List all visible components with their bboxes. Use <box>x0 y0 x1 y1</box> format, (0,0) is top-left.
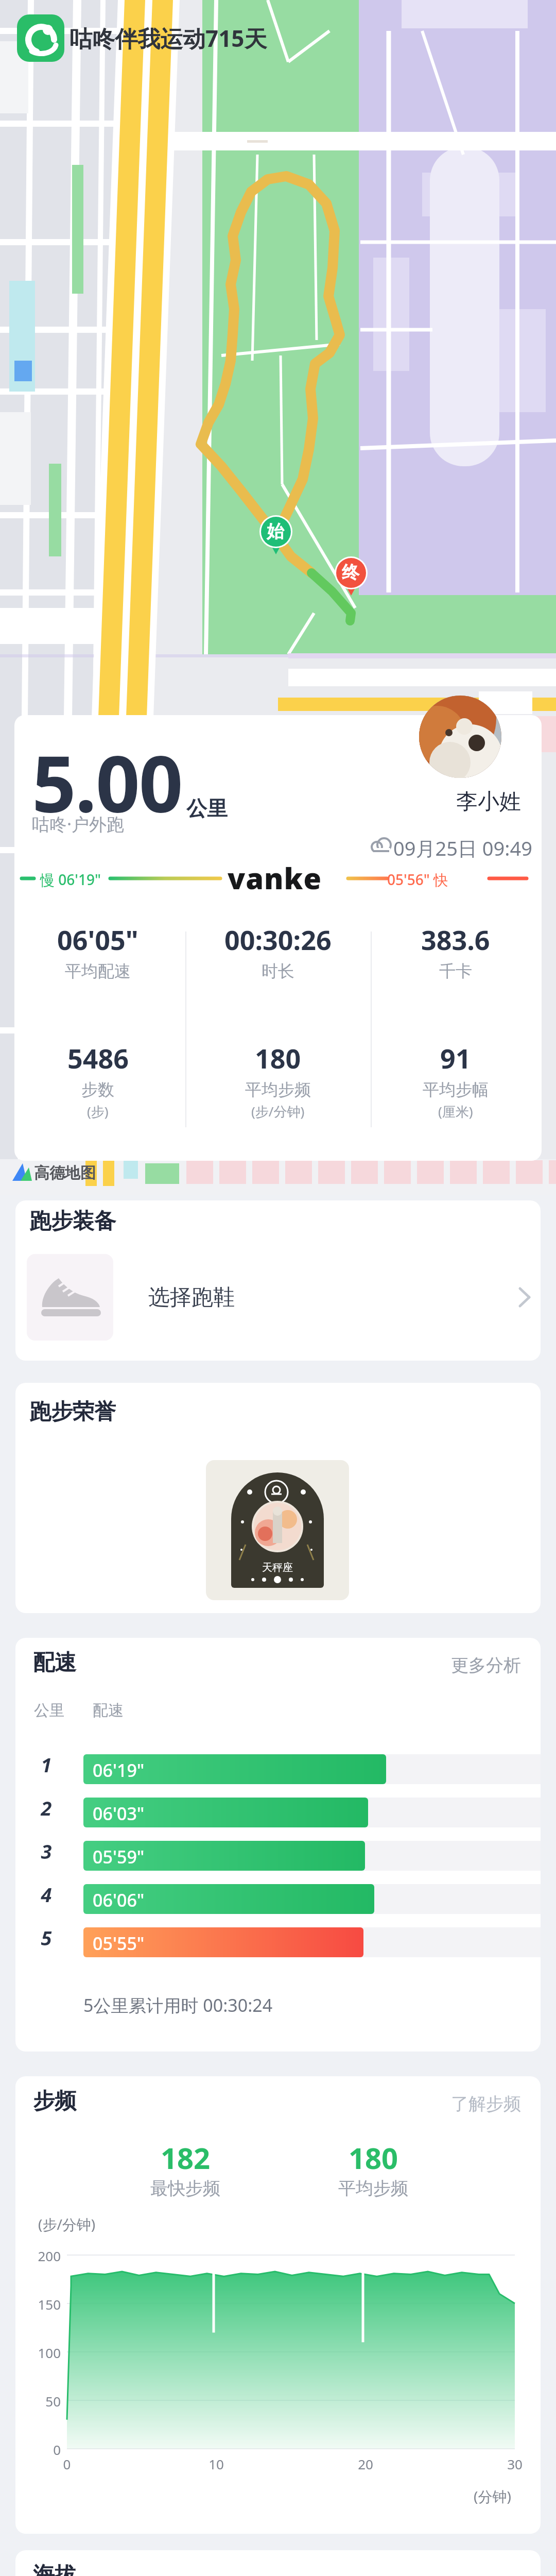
staticText: 5486 <box>67 1040 129 1076</box>
staticText: 公里 <box>34 1701 65 1720</box>
staticText: 公里 <box>186 795 228 821</box>
staticText: 30 <box>499 2455 530 2473</box>
staticText: 步频 <box>33 2088 76 2115</box>
staticText: 5 <box>36 1924 57 1951</box>
staticText: 终 <box>342 562 359 584</box>
button[interactable]: 天秤座 <box>206 1460 349 1600</box>
staticText: 时长 <box>262 961 294 981</box>
button[interactable]: 了解步频 <box>451 2093 521 2115</box>
staticText: 慢 06'19" <box>40 870 101 889</box>
staticText: 50 <box>28 2392 61 2410</box>
staticText: 180 <box>255 1040 301 1076</box>
staticText: 91 <box>440 1040 471 1076</box>
staticText: 高德地图 <box>34 1163 96 1183</box>
staticText: 始 <box>267 520 284 543</box>
staticText: (步/分钟) <box>251 1102 305 1121</box>
staticText: 06'06" <box>93 1888 145 1912</box>
staticText: 平均步频 <box>245 1079 311 1100</box>
staticText: 06'03" <box>93 1802 145 1825</box>
staticText: 0 <box>28 2441 61 2459</box>
staticText: (厘米) <box>438 1102 473 1121</box>
staticText: 4 <box>36 1881 57 1908</box>
staticText: 06'19" <box>93 1758 145 1782</box>
staticText: 06'05" <box>57 921 138 958</box>
staticText: 海拔 <box>33 2562 76 2576</box>
staticText: 最快步频 <box>150 2177 220 2199</box>
staticText: 跑步装备 <box>29 1208 116 1235</box>
staticText: (分钟) <box>474 2486 511 2506</box>
staticText: 步数 <box>81 1079 114 1100</box>
staticText: 平均配速 <box>65 961 131 981</box>
staticText: 咕咚·户外跑 <box>32 812 125 836</box>
staticText: 05'59" <box>93 1845 145 1869</box>
button[interactable]: 咕咚伴我运动715天 <box>17 14 267 62</box>
staticText: 00:30:26 <box>224 921 332 958</box>
staticText: 配速 <box>33 1649 76 1676</box>
button[interactable]: 选择跑鞋 <box>27 1254 530 1341</box>
staticText: 180 <box>349 2138 398 2177</box>
staticText: 选择跑鞋 <box>148 1284 235 1311</box>
staticText: 咕咚伴我运动715天 <box>69 23 267 54</box>
staticText: 5公里累计用时 00:30:24 <box>83 1993 273 2017</box>
button[interactable]: 更多分析 <box>451 1654 521 1676</box>
staticText: 05'55" <box>93 1931 145 1955</box>
staticText: 0 <box>51 2455 82 2473</box>
staticText: 千卡 <box>439 961 472 981</box>
staticText: vanke <box>228 858 322 897</box>
staticText: 09月25日 09:49 <box>393 835 532 861</box>
staticText: 05'56" 快 <box>387 870 448 889</box>
staticText: 150 <box>28 2295 61 2313</box>
staticText: 200 <box>28 2247 61 2265</box>
staticText: 5.00 <box>32 730 182 835</box>
staticText: 1 <box>36 1751 57 1778</box>
staticText: 平均步频 <box>338 2177 408 2199</box>
staticText: (步) <box>87 1102 109 1121</box>
staticText: 10 <box>201 2455 232 2473</box>
staticText: 李小姓 <box>456 788 521 816</box>
staticText: 平均步幅 <box>423 1079 489 1100</box>
staticText: 383.6 <box>421 921 490 958</box>
staticText: 天秤座 <box>262 1561 293 1574</box>
staticText: (步/分钟) <box>38 2214 96 2234</box>
staticText: 182 <box>161 2138 211 2177</box>
staticText: 2 <box>36 1794 57 1821</box>
staticText: 跑步荣誉 <box>29 1398 116 1426</box>
staticText: 20 <box>350 2455 381 2473</box>
staticText: 100 <box>28 2344 61 2362</box>
button[interactable] <box>419 696 501 778</box>
staticText: 3 <box>36 1838 57 1865</box>
staticText: 配速 <box>93 1701 124 1720</box>
